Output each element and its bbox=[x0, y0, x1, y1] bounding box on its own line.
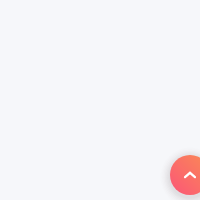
button[interactable]: Scroll to top bbox=[170, 155, 200, 195]
